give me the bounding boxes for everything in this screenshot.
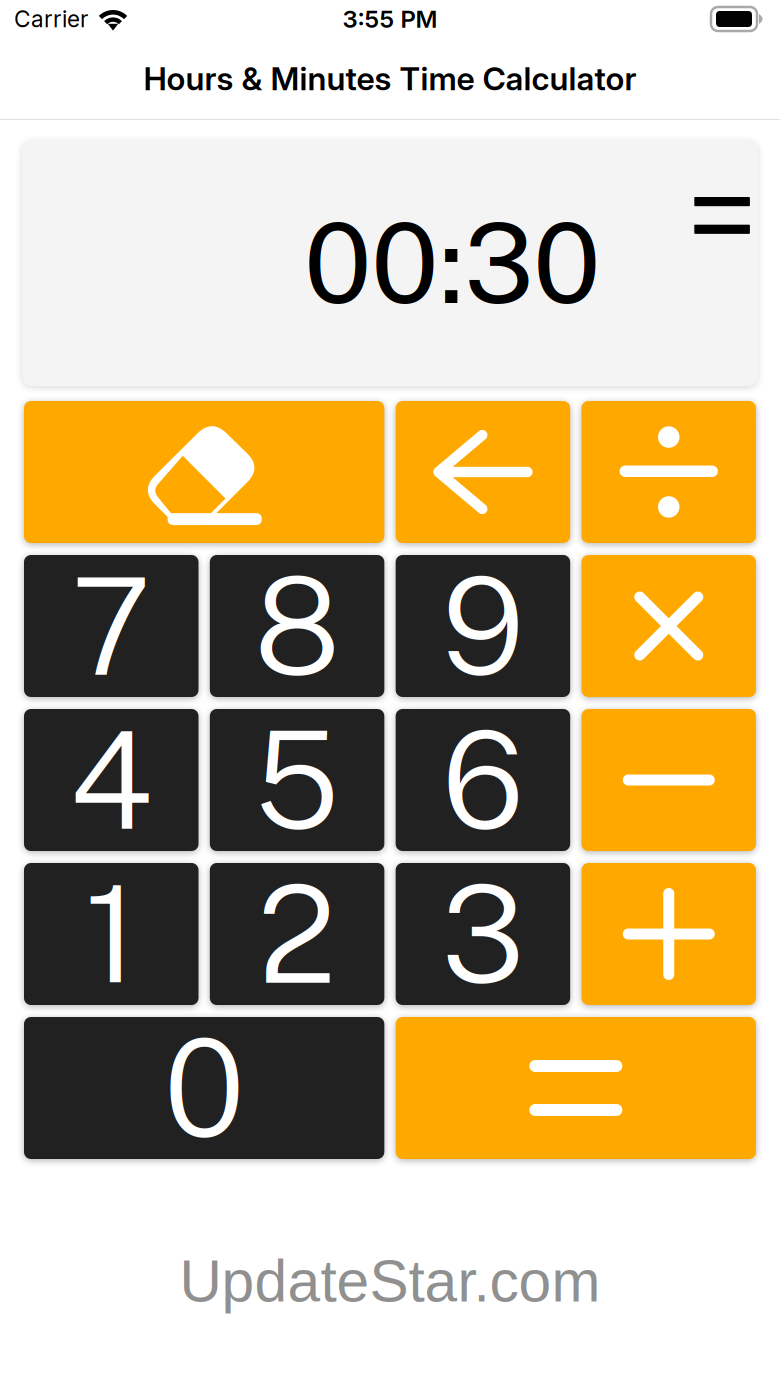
- staticText: UpdateStar.com: [179, 1248, 600, 1314]
- button[interactable]: 8: [210, 555, 384, 697]
- button[interactable]: Backspace: [396, 401, 570, 543]
- staticText: Carrier: [14, 5, 88, 33]
- button[interactable]: Clear: [24, 401, 384, 543]
- staticText: 6: [442, 701, 524, 859]
- button[interactable]: 4: [24, 709, 198, 851]
- button[interactable]: 9: [396, 555, 570, 697]
- button[interactable]: 0: [24, 1017, 384, 1159]
- staticText: 3: [441, 855, 525, 1013]
- button[interactable]: 5: [210, 709, 384, 851]
- button[interactable]: Equals: [396, 1017, 756, 1159]
- button[interactable]: Plus: [581, 863, 756, 1005]
- button[interactable]: 2: [210, 863, 384, 1005]
- staticText: 0: [164, 1009, 245, 1167]
- staticText: 1: [84, 855, 138, 1013]
- staticText: Hours & Minutes Time Calculator: [143, 59, 636, 98]
- button[interactable]: 7: [24, 555, 198, 697]
- staticText: 00:30: [304, 198, 601, 328]
- staticText: 8: [254, 547, 340, 705]
- staticText: 9: [441, 547, 524, 705]
- button[interactable]: 1: [24, 863, 198, 1005]
- button[interactable]: Divide: [581, 401, 756, 543]
- staticText: 3:55 PM: [342, 4, 437, 33]
- button[interactable]: Minus: [581, 709, 756, 851]
- button[interactable]: 6: [396, 709, 570, 851]
- button[interactable]: Multiply: [581, 555, 756, 697]
- staticText: 5: [255, 701, 340, 859]
- staticText: 4: [69, 701, 153, 859]
- staticText: 2: [258, 855, 337, 1013]
- staticText: 7: [71, 547, 151, 705]
- button[interactable]: 3: [396, 863, 570, 1005]
